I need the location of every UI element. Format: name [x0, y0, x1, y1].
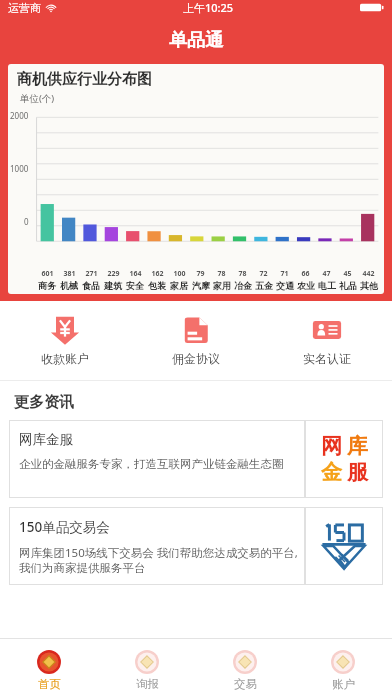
- button[interactable]: 收款账户: [0, 309, 130, 372]
- staticText: 78: [238, 269, 247, 279]
- staticText: 164: [129, 269, 142, 279]
- staticText: 食品: [82, 280, 100, 291]
- other: 收款账户: [50, 315, 80, 345]
- staticText: 电工: [318, 280, 336, 291]
- staticText: 71: [280, 269, 289, 279]
- button[interactable]: 实名认证: [261, 309, 392, 372]
- staticText: 交易: [234, 677, 257, 691]
- staticText: 汽摩: [192, 280, 210, 291]
- staticText: 收款账户: [41, 351, 89, 366]
- staticText: 家居: [170, 280, 188, 291]
- staticText: 78: [217, 269, 226, 279]
- other: 实名认证: [312, 315, 342, 345]
- staticText: 150单品交易会: [19, 518, 110, 536]
- staticText: 账户: [332, 677, 355, 691]
- staticText: 实名认证: [303, 351, 351, 366]
- staticText: 72: [259, 269, 268, 279]
- staticText: 更多资讯: [14, 393, 74, 412]
- staticText: 首页: [38, 677, 61, 691]
- button[interactable]: 佣金协议: [130, 309, 261, 372]
- staticText: 佣金协议: [172, 351, 220, 366]
- staticText: 271: [85, 269, 98, 279]
- staticText: 服: [347, 459, 368, 485]
- button[interactable]: 账户: [294, 644, 392, 691]
- staticText: 运营商: [8, 1, 41, 15]
- staticText: 库: [347, 433, 368, 459]
- staticText: 381: [63, 269, 76, 279]
- staticText: 安全: [126, 280, 144, 291]
- staticText: 礼品: [339, 280, 357, 291]
- staticText: 企业的金融服务专家，打造互联网产业链金融生态圈: [19, 457, 284, 471]
- staticText: 601: [41, 269, 54, 279]
- staticText: 47: [322, 269, 331, 279]
- staticText: 金: [321, 459, 342, 485]
- staticText: 66: [301, 269, 310, 279]
- staticText: 2000: [10, 110, 29, 121]
- staticText: 交通: [276, 280, 294, 291]
- staticText: 包装: [148, 280, 166, 291]
- staticText: 上午10:25: [183, 0, 234, 15]
- staticText: 229: [107, 269, 120, 279]
- staticText: 100: [173, 269, 186, 279]
- staticText: 单位(个): [20, 92, 55, 105]
- other: 佣金协议: [182, 316, 210, 344]
- staticText: 我们为商家提供服务平台: [19, 561, 146, 575]
- staticText: 网库集团150场线下交易会 我们帮助您达成交易的平台,: [19, 545, 298, 561]
- staticText: 网: [321, 433, 342, 459]
- staticText: 建筑: [104, 280, 122, 291]
- staticText: 单品通: [169, 29, 223, 52]
- staticText: 0: [24, 216, 29, 227]
- staticText: 询报: [136, 677, 159, 691]
- staticText: 农业: [297, 280, 315, 291]
- staticText: 冶金: [234, 280, 252, 291]
- button[interactable]: 网库金服: [9, 420, 383, 498]
- button[interactable]: 首页: [0, 644, 98, 691]
- staticText: 网库金服: [19, 431, 73, 448]
- staticText: 442: [362, 269, 375, 279]
- staticText: 五金: [255, 280, 273, 291]
- staticText: 机械: [60, 280, 78, 291]
- staticText: 家用: [213, 280, 231, 291]
- button[interactable]: 询报: [98, 644, 196, 691]
- staticText: 79: [196, 269, 205, 279]
- staticText: 45: [343, 269, 352, 279]
- staticText: 1000: [10, 163, 29, 174]
- staticText: 商务: [38, 280, 56, 291]
- button[interactable]: 交易: [196, 644, 294, 691]
- staticText: 162: [151, 269, 164, 279]
- button[interactable]: 150单品交易会: [9, 507, 383, 585]
- staticText: 其他: [360, 280, 378, 291]
- staticText: 商机供应行业分布图: [17, 70, 152, 89]
